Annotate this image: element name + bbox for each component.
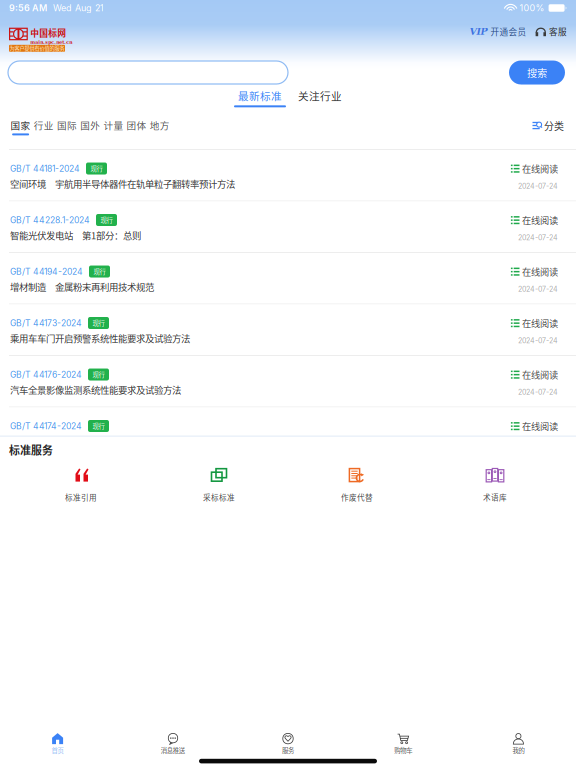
- staticText: 2024-07-24: [518, 285, 558, 293]
- staticText: 100%: [520, 3, 545, 13]
- staticText: main.spc.net.cn: [30, 39, 72, 45]
- staticText: GB/T 44176-2024: [10, 369, 82, 380]
- staticText: 现行: [90, 164, 102, 173]
- staticText: 9:56 AM: [9, 3, 47, 13]
- staticText: 标准引用: [65, 492, 97, 503]
- button[interactable]: 服务: [230, 724, 346, 755]
- button[interactable]: 搜索: [509, 60, 565, 84]
- staticText: GB/T 44173-2024: [10, 318, 82, 328]
- staticText: 中国标网: [30, 26, 66, 39]
- staticText: 首页: [52, 746, 64, 755]
- button[interactable]: 团体: [125, 118, 148, 135]
- button[interactable]: 购物车: [346, 724, 461, 755]
- staticText: 在线阅读: [522, 265, 558, 278]
- staticText: 2024-07-24: [518, 388, 558, 396]
- staticText: GB/T 44228.1-2024: [10, 215, 90, 225]
- staticText: 关注行业: [298, 88, 342, 103]
- staticText: 在线阅读: [522, 419, 558, 433]
- staticText: 采标标准: [203, 492, 235, 503]
- button[interactable]: 采标标准: [150, 468, 288, 503]
- staticText: Wed Aug 21: [53, 3, 104, 13]
- staticText: 地方: [150, 118, 170, 132]
- button[interactable]: 消息推送: [115, 724, 230, 755]
- staticText: 作废代替: [341, 492, 373, 503]
- staticText: 现行: [100, 215, 112, 225]
- staticText: 计量: [103, 118, 123, 132]
- button[interactable]: 标准引用: [12, 468, 150, 503]
- staticText: 在线阅读: [522, 162, 558, 175]
- button[interactable]: 我的: [461, 724, 576, 755]
- button[interactable]: GB/T 44173-2024: [0, 304, 576, 355]
- staticText: 现行: [93, 267, 105, 276]
- staticText: 在线阅读: [522, 213, 558, 227]
- staticText: 分类: [544, 118, 564, 133]
- button[interactable]: 作废代替: [288, 468, 426, 503]
- button[interactable]: 首页: [0, 724, 115, 755]
- staticText: 2024-07-24: [518, 233, 558, 242]
- staticText: 标准服务: [9, 442, 53, 458]
- button[interactable]: 客服: [527, 25, 567, 38]
- staticText: 国际: [57, 118, 77, 132]
- staticText: GB/T 44174-2024: [10, 421, 82, 431]
- staticText: 现行: [92, 370, 104, 379]
- button[interactable]: 国家: [9, 118, 32, 135]
- staticText: 增材制造 金属粉末再利用技术规范: [10, 280, 154, 293]
- button[interactable]: GB/T 44228.1-2024: [0, 201, 576, 252]
- staticText: 服务: [282, 746, 294, 755]
- staticText: 乘用车车门开启预警系统性能要求及试验方法: [10, 331, 190, 345]
- staticText: 行业: [34, 118, 54, 132]
- staticText: 在线阅读: [522, 316, 558, 330]
- staticText: 我的: [512, 746, 524, 755]
- staticText: 消息推送: [161, 746, 185, 755]
- staticText: 智能光伏发电站 第1部分：总则: [10, 228, 141, 242]
- staticText: 购物车: [394, 746, 412, 755]
- staticText: 空间环境 宇航用半导体器件在轨单粒子翻转率预计方法: [10, 177, 235, 190]
- button[interactable]: 最新标准: [233, 88, 287, 107]
- staticText: GB/T 44194-2024: [10, 266, 83, 277]
- staticText: 汽车全景影像监测系统性能要求及试验方法: [10, 383, 181, 396]
- staticText: 2024-07-24: [518, 336, 558, 345]
- button[interactable]: 计量: [102, 118, 125, 135]
- staticText: 现行: [92, 318, 104, 328]
- staticText: 最新标准: [238, 88, 282, 103]
- staticText: VIP: [470, 26, 488, 37]
- button[interactable]: 分类: [532, 118, 564, 133]
- button[interactable]: GB/T 44194-2024: [0, 253, 576, 303]
- button[interactable]: 地方: [148, 118, 171, 135]
- button[interactable]: 关注行业: [293, 88, 347, 107]
- button[interactable]: 术语库: [426, 468, 564, 503]
- staticText: 搜索: [527, 65, 547, 80]
- staticText: GB/T 44181-2024: [10, 163, 80, 174]
- staticText: 在线阅读: [522, 368, 558, 381]
- staticText: 客服: [549, 25, 567, 38]
- staticText: 团体: [127, 118, 147, 132]
- button[interactable]: 行业: [32, 118, 55, 135]
- staticText: 国外: [80, 118, 100, 132]
- button[interactable]: GB/T 44176-2024: [0, 356, 576, 406]
- staticText: 为客户提供有价值的服务: [9, 45, 64, 52]
- staticText: 国家: [11, 118, 31, 132]
- button[interactable]: VIP: [470, 25, 527, 38]
- staticText: 开通会员: [491, 25, 527, 38]
- staticText: 现行: [92, 421, 104, 431]
- button[interactable]: GB/T 44174-2024: [0, 407, 576, 435]
- staticText: 2024-07-24: [518, 182, 558, 190]
- button[interactable]: GB/T 44181-2024: [0, 150, 576, 200]
- button[interactable]: 国外: [79, 118, 102, 135]
- staticText: 术语库: [483, 492, 507, 503]
- button[interactable]: 国际: [55, 118, 79, 135]
